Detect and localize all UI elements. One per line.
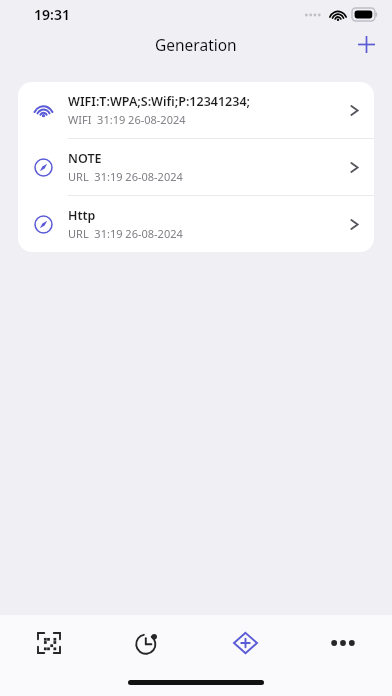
button[interactable]: Generate xyxy=(196,615,294,671)
button[interactable]: More xyxy=(294,615,392,671)
button[interactable]: History xyxy=(98,615,196,671)
button[interactable]: Add xyxy=(348,28,384,60)
button[interactable]: NOTE xyxy=(18,139,374,195)
staticText: URL 31:19 26-08-2024 xyxy=(68,226,183,241)
button[interactable]: WIFI:T:WPA;S:Wifi;P:12341234; xyxy=(18,82,374,138)
staticText: Http xyxy=(68,207,96,224)
staticText: WIFI 31:19 26-08-2024 xyxy=(68,112,186,127)
staticText: WIFI:T:WPA;S:Wifi;P:12341234; xyxy=(68,93,251,110)
button[interactable]: Scan xyxy=(0,615,98,671)
staticText: 19:31 xyxy=(34,5,70,24)
staticText: URL 31:19 26-08-2024 xyxy=(68,169,183,184)
staticText: Generation xyxy=(155,34,237,55)
staticText: NOTE xyxy=(68,150,102,167)
button[interactable]: Http xyxy=(18,196,374,252)
